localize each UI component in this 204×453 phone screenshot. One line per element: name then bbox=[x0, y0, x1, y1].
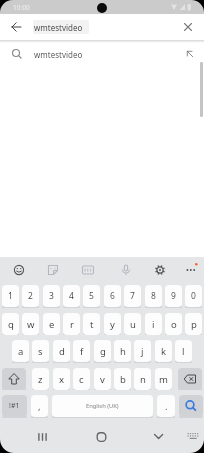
staticText: . bbox=[165, 400, 168, 413]
button[interactable]: x bbox=[53, 368, 70, 390]
button[interactable] bbox=[117, 261, 135, 279]
button[interactable]: English (UK) bbox=[52, 395, 153, 417]
button[interactable] bbox=[79, 261, 97, 279]
staticText: g bbox=[100, 345, 106, 358]
staticText: s bbox=[38, 345, 43, 358]
button[interactable] bbox=[10, 261, 28, 279]
staticText: w bbox=[27, 318, 35, 331]
button[interactable]: k bbox=[155, 340, 172, 362]
staticText: r bbox=[70, 318, 74, 331]
staticText: k bbox=[161, 345, 167, 358]
button[interactable] bbox=[146, 426, 172, 448]
button[interactable] bbox=[30, 426, 56, 448]
button[interactable]: e bbox=[43, 313, 60, 335]
staticText: y bbox=[110, 318, 115, 331]
button[interactable]: b bbox=[114, 368, 131, 390]
button[interactable]: i bbox=[145, 313, 162, 335]
button[interactable]: a bbox=[12, 340, 29, 362]
staticText: English (UK) bbox=[86, 402, 119, 410]
staticText: m bbox=[159, 373, 168, 386]
button[interactable] bbox=[178, 368, 202, 390]
staticText: b bbox=[120, 373, 126, 386]
staticText: 9 bbox=[171, 290, 176, 302]
button[interactable]: 2 bbox=[22, 285, 39, 307]
button[interactable] bbox=[0, 14, 40, 40]
staticText: a bbox=[18, 345, 24, 358]
button[interactable]: j bbox=[134, 340, 151, 362]
staticText: v bbox=[100, 373, 105, 386]
staticText: wmtestvideo bbox=[34, 49, 83, 60]
button[interactable] bbox=[176, 14, 204, 40]
button[interactable] bbox=[2, 368, 26, 390]
button[interactable]: n bbox=[134, 368, 151, 390]
button[interactable]: 3 bbox=[43, 285, 60, 307]
button[interactable]: z bbox=[32, 368, 49, 390]
button[interactable]: c bbox=[73, 368, 90, 390]
staticText: d bbox=[59, 345, 65, 358]
button[interactable]: t bbox=[83, 313, 100, 335]
button[interactable]: 7 bbox=[124, 285, 141, 307]
staticText: f bbox=[80, 345, 84, 358]
button[interactable]: 1 bbox=[2, 285, 19, 307]
staticText: q bbox=[8, 318, 14, 331]
button[interactable]: u bbox=[124, 313, 141, 335]
staticText: 3 bbox=[49, 290, 54, 302]
staticText: 4 bbox=[69, 290, 74, 302]
staticText: !#1 bbox=[9, 401, 20, 411]
button[interactable] bbox=[88, 426, 114, 448]
button[interactable]: q bbox=[2, 313, 19, 335]
staticText: o bbox=[171, 318, 177, 331]
button[interactable]: o bbox=[165, 313, 182, 335]
staticText: 7 bbox=[130, 290, 135, 302]
button[interactable]: h bbox=[114, 340, 131, 362]
staticText: 5 bbox=[89, 290, 94, 302]
button[interactable] bbox=[44, 261, 62, 279]
button[interactable]: !#1 bbox=[2, 395, 27, 417]
button[interactable]: s bbox=[32, 340, 49, 362]
staticText: i bbox=[152, 318, 155, 331]
button[interactable]: r bbox=[63, 313, 80, 335]
button[interactable]: 0 bbox=[185, 285, 202, 307]
button[interactable]: 9 bbox=[165, 285, 182, 307]
staticText: 10:00 bbox=[13, 3, 30, 12]
button[interactable] bbox=[0, 43, 204, 67]
button[interactable]: . bbox=[157, 395, 175, 417]
button[interactable]: , bbox=[31, 395, 48, 417]
button[interactable]: 8 bbox=[145, 285, 162, 307]
button[interactable]: l bbox=[175, 340, 192, 362]
staticText: n bbox=[140, 373, 146, 386]
staticText: j bbox=[141, 345, 144, 358]
staticText: e bbox=[49, 318, 55, 331]
button[interactable]: y bbox=[104, 313, 121, 335]
button[interactable] bbox=[182, 261, 200, 279]
staticText: c bbox=[79, 373, 84, 386]
staticText: p bbox=[191, 318, 197, 331]
staticText: 6 bbox=[110, 290, 115, 302]
staticText: 0 bbox=[191, 290, 196, 302]
button[interactable]: 6 bbox=[104, 285, 121, 307]
staticText: l bbox=[182, 345, 185, 358]
staticText: u bbox=[130, 318, 136, 331]
staticText: z bbox=[38, 373, 43, 386]
staticText: wmtestvideo bbox=[34, 22, 83, 33]
button[interactable]: 4 bbox=[63, 285, 80, 307]
button[interactable]: f bbox=[73, 340, 90, 362]
button[interactable] bbox=[151, 261, 169, 279]
button[interactable] bbox=[179, 395, 203, 417]
staticText: x bbox=[59, 373, 65, 386]
staticText: h bbox=[120, 345, 126, 358]
button[interactable]: g bbox=[94, 340, 111, 362]
button[interactable]: d bbox=[53, 340, 70, 362]
staticText: t bbox=[90, 318, 94, 331]
button[interactable]: v bbox=[94, 368, 111, 390]
button[interactable]: p bbox=[185, 313, 202, 335]
button[interactable]: 5 bbox=[83, 285, 100, 307]
button[interactable] bbox=[184, 428, 202, 446]
button[interactable]: m bbox=[155, 368, 172, 390]
staticText: 1 bbox=[8, 290, 13, 302]
staticText: , bbox=[38, 400, 41, 413]
staticText: 2 bbox=[28, 290, 33, 302]
button[interactable]: w bbox=[22, 313, 39, 335]
staticText: 8 bbox=[151, 290, 156, 302]
